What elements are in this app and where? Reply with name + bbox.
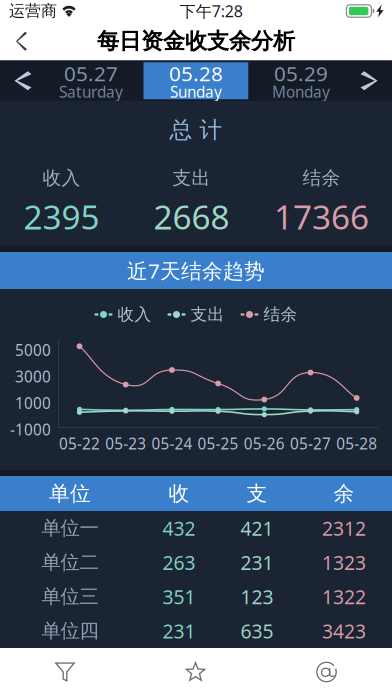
button[interactable]: Mentions: [261, 648, 392, 696]
staticText: 2668: [153, 194, 229, 239]
staticText: 05-24: [151, 433, 192, 454]
staticText: 123: [240, 583, 273, 610]
staticText: 收入: [117, 304, 151, 325]
button[interactable]: Back: [0, 21, 54, 61]
staticText: 结余: [263, 304, 297, 325]
staticText: 余: [333, 480, 354, 506]
staticText: 收入: [42, 166, 80, 190]
staticText: 单位: [49, 480, 91, 506]
staticText: 2312: [322, 515, 366, 541]
staticText: Saturday: [59, 81, 123, 102]
button[interactable]: 单位四: [0, 614, 392, 648]
staticText: 351: [162, 583, 195, 610]
button[interactable]: 05.27: [38, 62, 143, 99]
staticText: 421: [240, 515, 273, 541]
staticText: 05-23: [105, 433, 146, 454]
staticText: 05-26: [244, 433, 285, 454]
staticText: 1000: [15, 392, 51, 413]
staticText: 单位三: [41, 584, 98, 609]
staticText: 05-28: [336, 433, 377, 454]
staticText: 231: [162, 618, 195, 644]
staticText: 运营商: [9, 1, 57, 21]
staticText: Sunday: [170, 81, 222, 102]
staticText: 231: [240, 549, 273, 575]
staticText: 近7天结余趋势: [127, 256, 265, 284]
staticText: 单位一: [41, 516, 98, 540]
staticText: 05.28: [169, 59, 223, 87]
button[interactable]: Previous day: [7, 61, 38, 101]
staticText: -1000: [10, 419, 51, 440]
button[interactable]: Favorites: [130, 648, 261, 696]
button[interactable]: 单位一: [0, 511, 392, 545]
staticText: 17366: [274, 194, 369, 239]
staticText: Monday: [272, 81, 330, 102]
staticText: 单位四: [41, 619, 98, 643]
staticText: 05.29: [274, 59, 328, 87]
staticText: 05-27: [290, 433, 331, 454]
staticText: 支出: [190, 304, 224, 325]
staticText: 3423: [322, 618, 366, 644]
button[interactable]: 单位二: [0, 545, 392, 579]
staticText: 下午7:28: [180, 0, 243, 22]
staticText: 总 计: [169, 116, 222, 144]
staticText: 3000: [15, 366, 51, 387]
button[interactable]: 05.28: [143, 62, 248, 99]
staticText: 05.27: [64, 59, 118, 87]
staticText: 263: [162, 549, 195, 575]
staticText: 支出: [172, 166, 210, 190]
button[interactable]: Next day: [353, 61, 384, 101]
staticText: 05-25: [198, 433, 239, 454]
button[interactable]: 05.29: [248, 62, 353, 99]
staticText: 1322: [322, 583, 366, 610]
staticText: 635: [240, 618, 273, 644]
button[interactable]: 单位三: [0, 579, 392, 614]
staticText: 支: [246, 480, 267, 506]
staticText: 收: [168, 480, 189, 506]
staticText: 1323: [322, 549, 366, 575]
staticText: 5000: [15, 339, 51, 360]
staticText: 2395: [23, 194, 99, 239]
staticText: 单位二: [41, 550, 98, 575]
staticText: 每日资金收支余分析: [97, 27, 295, 55]
staticText: 432: [162, 515, 195, 541]
staticText: 05-22: [59, 433, 100, 454]
staticText: 结余: [302, 166, 340, 190]
button[interactable]: Filter: [0, 648, 130, 696]
